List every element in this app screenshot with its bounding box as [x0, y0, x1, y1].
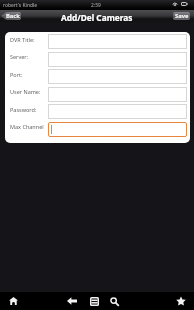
staticText: robert's Kindle [3, 2, 38, 9]
button[interactable]: Search [105, 292, 123, 310]
button[interactable]: Favorites [172, 292, 190, 310]
button[interactable] [48, 104, 187, 119]
button[interactable] [48, 69, 187, 84]
staticText: User Name: [10, 88, 41, 95]
button[interactable]: Save [173, 12, 190, 20]
button[interactable]: Home [4, 292, 22, 310]
staticText: Server: [10, 53, 29, 60]
staticText: Save [175, 12, 189, 20]
staticText: Port: [10, 71, 23, 78]
staticText: Max Channel [10, 123, 44, 130]
staticText: DVR Title: [10, 36, 35, 43]
button[interactable]: Back [63, 292, 81, 310]
staticText: Back [6, 12, 20, 20]
button[interactable]: Menu [85, 292, 103, 310]
staticText: 2:59 [91, 2, 101, 9]
staticText: Password: [10, 106, 37, 113]
button[interactable] [48, 122, 187, 137]
button[interactable]: Back [1, 12, 21, 20]
button[interactable] [48, 34, 187, 49]
staticText: Add/Del Cameras [61, 12, 133, 23]
button[interactable] [48, 52, 187, 67]
button[interactable] [48, 87, 187, 102]
